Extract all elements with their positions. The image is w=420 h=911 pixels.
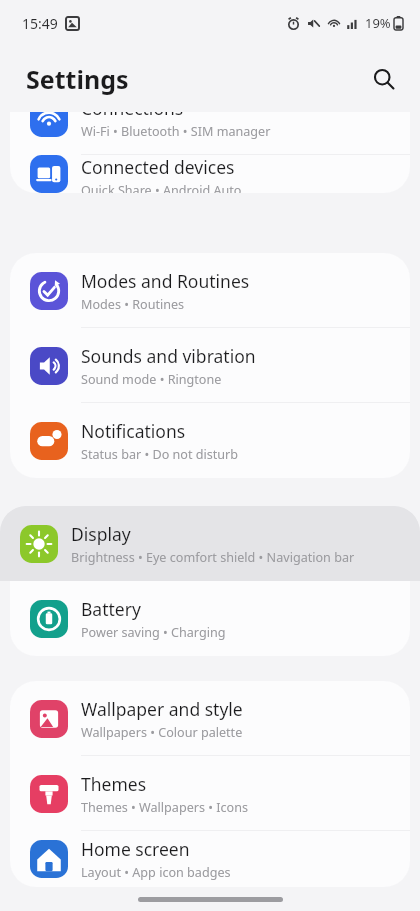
staticText: Connected devices (81, 155, 235, 179)
staticText: Brightness • Eye comfort shield • Naviga… (71, 549, 355, 566)
button[interactable]: Home screen (10, 831, 410, 887)
staticText: Layout • App icon badges (81, 864, 231, 881)
staticText: Sounds and vibration (81, 344, 256, 368)
staticText: Wallpaper and style (81, 697, 243, 721)
staticText: Notifications (81, 419, 186, 443)
button[interactable]: Themes (10, 756, 410, 831)
staticText: Settings (26, 62, 129, 96)
button[interactable]: Sounds and vibration (10, 328, 410, 403)
staticText: Themes • Wallpapers • Icons (81, 799, 249, 816)
staticText: Display (71, 522, 131, 546)
staticText: Sound mode • Ringtone (81, 371, 222, 388)
staticText: Home screen (81, 837, 190, 861)
button[interactable]: Modes and Routines (10, 253, 410, 328)
staticText: Battery (81, 597, 141, 621)
staticText: Wallpapers • Colour palette (81, 724, 243, 741)
staticText: Quick Share • Android Auto (81, 182, 242, 193)
button[interactable]: Wallpaper and style (10, 681, 410, 756)
button[interactable]: Battery (10, 581, 410, 656)
button[interactable]: Connected devices (10, 155, 410, 193)
staticText: Status bar • Do not disturb (81, 446, 239, 463)
button[interactable]: Search (360, 55, 408, 103)
button[interactable]: Notifications (10, 403, 410, 478)
staticText: Themes (81, 772, 147, 796)
staticText: Power saving • Charging (81, 624, 226, 641)
staticText: Modes • Routines (81, 296, 185, 313)
staticText: Wi-Fi • Bluetooth • SIM manager (81, 123, 271, 140)
button[interactable]: Display (0, 506, 420, 581)
staticText: Connections (81, 112, 184, 120)
button[interactable]: Connections (10, 112, 410, 155)
staticText: 15:49 (22, 14, 58, 33)
staticText: 19% (365, 14, 391, 32)
staticText: Modes and Routines (81, 269, 250, 293)
